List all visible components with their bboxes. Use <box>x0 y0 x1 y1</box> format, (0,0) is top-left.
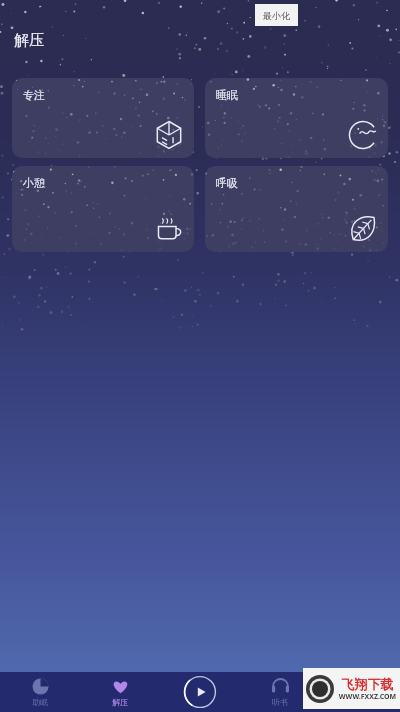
button[interactable]: 最小化 <box>255 4 298 26</box>
button[interactable]: Play <box>183 675 217 709</box>
staticText: WWW.FXXZ.COM <box>335 692 400 702</box>
button[interactable]: 专注 <box>12 78 194 158</box>
button[interactable]: 小憩 <box>12 166 194 252</box>
staticText: 解压 <box>112 697 128 707</box>
staticText: 最小化 <box>263 10 290 21</box>
staticText: 小憩 <box>23 176 45 190</box>
staticText: 我的 <box>352 697 368 707</box>
button[interactable]: 我的 <box>320 672 400 712</box>
button[interactable]: 解压 <box>80 672 160 712</box>
staticText: 专注 <box>23 88 45 102</box>
button[interactable]: 助眠 <box>0 672 80 712</box>
staticText: 睡眠 <box>216 88 238 102</box>
staticText: 飞翔下载 <box>335 676 400 692</box>
staticText: 助眠 <box>32 697 48 707</box>
staticText: 解压 <box>14 31 44 50</box>
staticText: 听书 <box>272 697 288 707</box>
button[interactable]: 睡眠 <box>205 78 388 158</box>
staticText: 呼吸 <box>216 176 238 190</box>
button[interactable]: 呼吸 <box>205 166 388 252</box>
button[interactable]: 听书 <box>240 672 320 712</box>
